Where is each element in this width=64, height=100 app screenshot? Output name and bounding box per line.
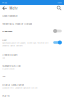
button[interactable]: Mobilfunknetze xyxy=(0,11,64,19)
button[interactable]: Tethering & mobiler Hotspot xyxy=(0,19,64,27)
staticText: Aus xyxy=(2,56,5,59)
button[interactable]: Search xyxy=(56,5,62,12)
button[interactable]: Flugmodus xyxy=(0,27,64,34)
staticText: Nachrichten xyxy=(2,67,14,70)
staticText: Android Beam xyxy=(2,53,17,56)
staticText: Standard-SMS-App xyxy=(2,64,20,67)
staticText: 14:02 xyxy=(2,1,7,4)
staticText: Digital Media Server xyxy=(2,83,24,86)
staticText: Mehr xyxy=(10,6,18,10)
button[interactable]: VPN xyxy=(0,72,64,80)
button[interactable]: NFC xyxy=(0,34,64,50)
staticText: NFC xyxy=(2,38,7,41)
staticText: Play To xyxy=(2,94,9,97)
staticText: VPN xyxy=(2,75,6,78)
button[interactable]: Digital Media Server xyxy=(0,80,64,91)
staticText: Mobilfunknetze xyxy=(2,14,17,17)
staticText: Tethering & mobiler Hotspot xyxy=(2,22,32,25)
button[interactable]: Android Beam xyxy=(0,50,64,61)
button[interactable]: Back xyxy=(2,5,8,12)
staticText: Datenaustausch erlauben, wenn das Telefo… xyxy=(2,41,48,47)
staticText: Medien mit anderen Geräten teilen xyxy=(2,86,37,89)
staticText: 100 % xyxy=(57,1,62,4)
button[interactable]: Play To xyxy=(0,91,64,99)
staticText: Flugmodus xyxy=(2,29,12,33)
button[interactable]: Standard-SMS-App xyxy=(0,61,64,72)
